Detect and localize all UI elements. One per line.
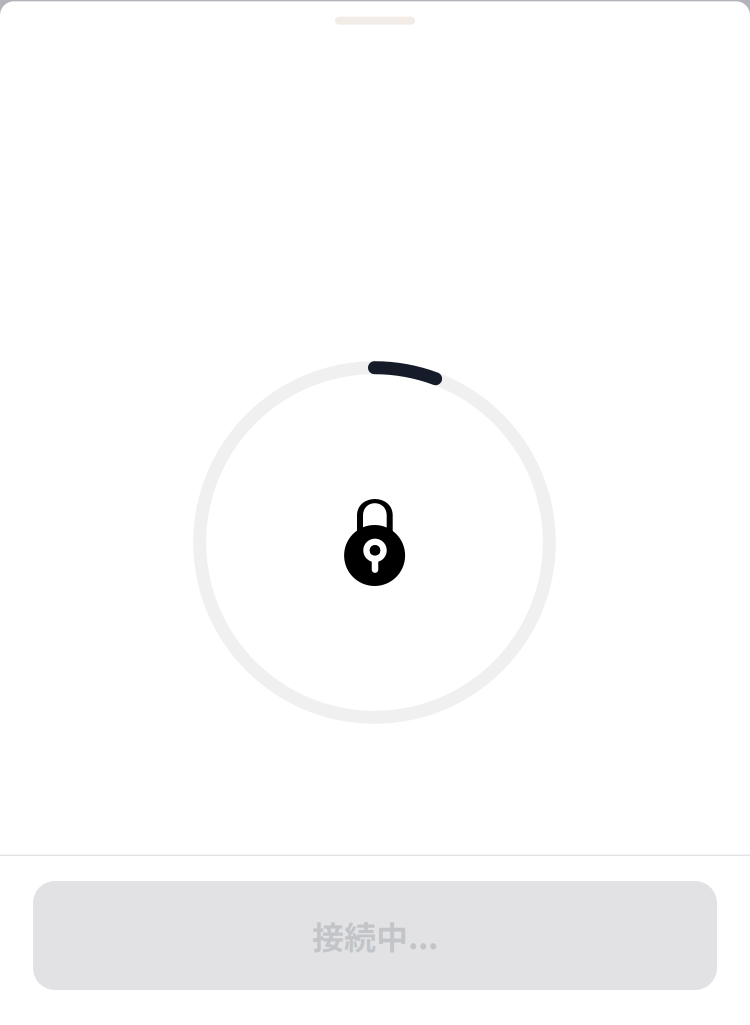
staticText: 接続中... bbox=[312, 912, 438, 959]
button[interactable]: 接続中... bbox=[33, 881, 717, 990]
